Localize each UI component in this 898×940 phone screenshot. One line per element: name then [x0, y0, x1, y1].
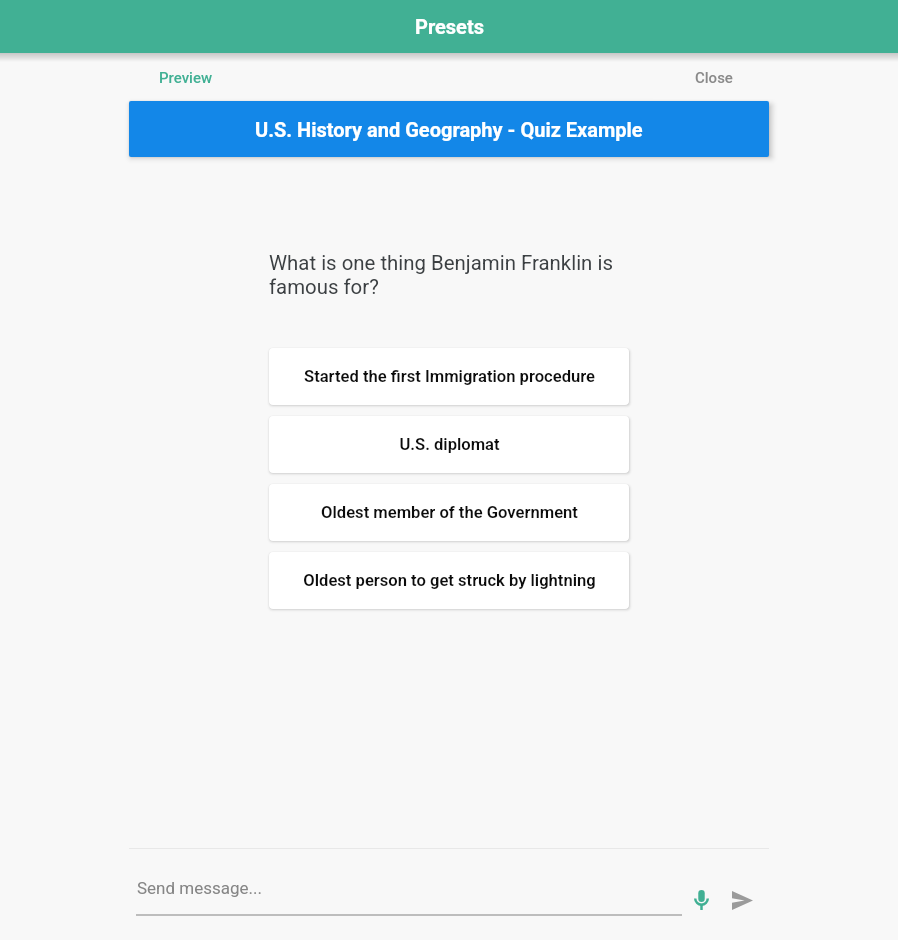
button[interactable]: U.S. diplomat	[269, 416, 629, 473]
button[interactable]: Oldest member of the Government	[269, 484, 629, 541]
staticText: Preview	[159, 69, 213, 87]
staticText: Send message...	[137, 878, 263, 898]
button[interactable]: Close	[695, 63, 733, 93]
staticText: Started the first Immigration procedure	[304, 367, 595, 386]
button[interactable]: Voice input	[678, 877, 724, 923]
button[interactable]: Send message	[719, 877, 765, 923]
staticText: U.S. diplomat	[399, 435, 500, 454]
button[interactable]: Preview	[159, 63, 213, 93]
button[interactable]: U.S. History and Geography - Quiz Exampl…	[129, 101, 769, 157]
staticText: Presets	[415, 15, 484, 38]
staticText: What is one thing Benjamin Franklin is f…	[269, 251, 629, 299]
staticText: Oldest person to get struck by lightning	[303, 571, 596, 590]
button[interactable]: Oldest person to get struck by lightning	[269, 552, 629, 609]
staticText: Close	[695, 69, 733, 87]
button[interactable]: Started the first Immigration procedure	[269, 348, 629, 405]
button[interactable]: Send message...	[136, 868, 682, 912]
staticText: Oldest member of the Government	[321, 503, 578, 522]
button[interactable]: Presets	[0, 0, 898, 53]
staticText: U.S. History and Geography - Quiz Exampl…	[255, 118, 643, 141]
